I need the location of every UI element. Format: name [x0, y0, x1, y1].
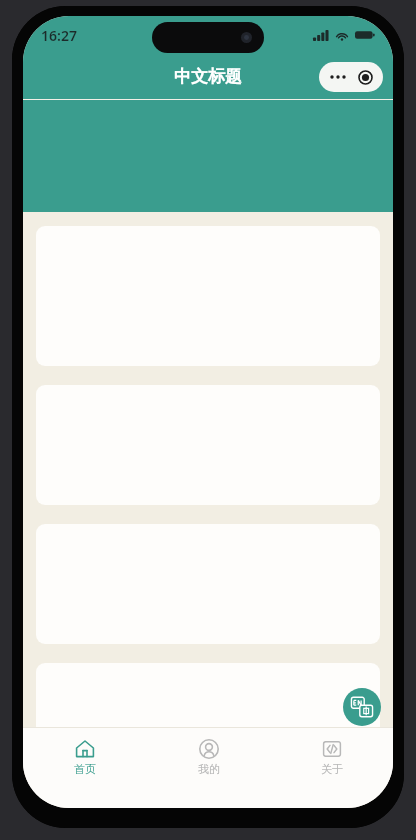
staticText: 16:27 [41, 26, 77, 45]
staticText: 首页 [74, 762, 96, 776]
button[interactable]: 我的 [147, 733, 270, 782]
button[interactable]: Translate language [343, 688, 381, 726]
staticText: 中文标题 [174, 66, 242, 87]
staticText: 关于 [321, 762, 343, 776]
staticText: 我的 [198, 762, 220, 776]
button[interactable] [36, 663, 380, 762]
button[interactable]: 首页 [23, 733, 147, 782]
button[interactable]: More options and close [319, 62, 383, 92]
button[interactable]: 关于 [270, 733, 393, 782]
